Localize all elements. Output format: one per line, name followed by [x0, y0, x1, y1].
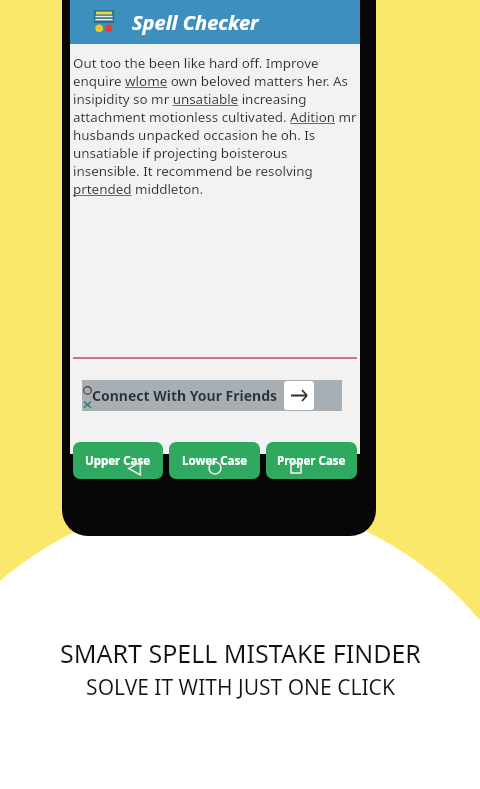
button[interactable]: Recent apps [280, 452, 312, 484]
button[interactable]: Back [118, 452, 150, 484]
button[interactable]: Connect With Your Friends [82, 380, 342, 411]
staticText: SOLVE IT WITH JUST ONE CLICK [86, 673, 395, 702]
button[interactable]: Upper Case [73, 442, 163, 479]
button[interactable]: Lower Case [169, 442, 260, 479]
button[interactable]: Open ad [284, 381, 314, 410]
staticText: Connect With Your Friends [92, 386, 278, 405]
staticText: Lower Case [182, 453, 248, 469]
staticText: Spell Checker [132, 9, 259, 36]
staticText: SMART SPELL MISTAKE FINDER [60, 636, 421, 670]
button[interactable]: Home [199, 452, 231, 484]
button[interactable]: Proper Case [266, 442, 357, 479]
staticText: Upper Case [85, 453, 151, 469]
staticText: Proper Case [277, 453, 346, 469]
staticText: Out too the been like hard off. Improve … [73, 54, 357, 198]
